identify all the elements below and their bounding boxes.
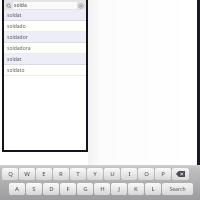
staticText: soldato	[7, 67, 25, 74]
button[interactable]: soldat	[4, 54, 86, 65]
button[interactable]: Clear search	[78, 3, 84, 9]
button[interactable]: J	[111, 183, 127, 195]
staticText: T	[76, 170, 80, 178]
button[interactable]: soldado	[4, 21, 86, 32]
other: Search	[6, 3, 12, 9]
button[interactable]: soldato	[4, 65, 86, 76]
button[interactable]: U	[104, 168, 120, 180]
button[interactable]: Backspace	[172, 168, 189, 180]
button[interactable]: W	[19, 168, 35, 180]
staticText: F	[66, 185, 70, 193]
staticText: I	[128, 170, 131, 178]
staticText: soldadora	[7, 45, 31, 52]
button[interactable]: Search	[4, 0, 86, 10]
staticText: soldador	[7, 34, 28, 41]
staticText: U	[110, 170, 115, 178]
staticText: Q	[8, 170, 13, 178]
button[interactable]: I	[121, 168, 137, 180]
staticText: P	[161, 170, 165, 178]
staticText: A	[15, 185, 19, 193]
staticText: soldado	[7, 23, 26, 30]
button[interactable]: P	[155, 168, 171, 180]
button[interactable]: G	[77, 183, 93, 195]
button[interactable]: F	[60, 183, 76, 195]
staticText: H	[100, 185, 105, 193]
button[interactable]: soldadora	[4, 43, 86, 54]
button[interactable]: K	[128, 183, 144, 195]
button[interactable]: soldador	[4, 32, 86, 43]
button[interactable]: L	[145, 183, 161, 195]
button[interactable]: H	[94, 183, 110, 195]
staticText: L	[151, 185, 155, 193]
button[interactable]: D	[43, 183, 59, 195]
staticText: W	[24, 170, 30, 178]
staticText: soldat	[7, 12, 22, 19]
button[interactable]: R	[53, 168, 69, 180]
staticText: S	[32, 185, 36, 193]
button[interactable]: O	[138, 168, 154, 180]
staticText: O	[144, 170, 149, 178]
button[interactable]: Y	[87, 168, 103, 180]
staticText: G	[83, 185, 88, 193]
staticText: J	[118, 185, 120, 193]
staticText: K	[134, 185, 138, 193]
button[interactable]: S	[26, 183, 42, 195]
button[interactable]: Search	[162, 183, 193, 195]
staticText: solda	[14, 2, 27, 9]
button[interactable]: E	[36, 168, 52, 180]
staticText: E	[42, 170, 46, 178]
staticText: Y	[93, 170, 97, 178]
button[interactable]: T	[70, 168, 86, 180]
staticText: soldat	[7, 56, 22, 63]
button[interactable]: A	[9, 183, 25, 195]
staticText: D	[49, 185, 54, 193]
button[interactable]: soldat	[4, 10, 86, 21]
button[interactable]: Q	[2, 168, 18, 180]
staticText: Search	[169, 186, 186, 193]
staticText: R	[59, 170, 63, 178]
